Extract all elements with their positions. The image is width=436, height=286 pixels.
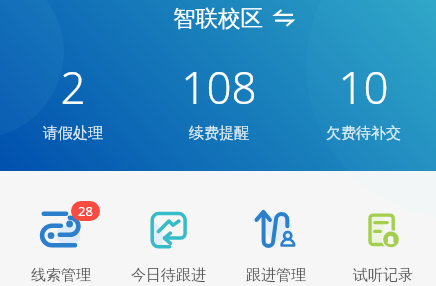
staticText: 跟进管理: [246, 266, 306, 285]
staticText: 今日待跟进: [131, 266, 206, 285]
staticText: 108: [181, 57, 257, 117]
button[interactable]: 今日待跟进: [115, 210, 222, 285]
button[interactable]: 智联校区: [0, 0, 436, 36]
staticText: 2: [60, 57, 86, 117]
button[interactable]: 2: [0, 57, 146, 143]
button[interactable]: 10: [291, 57, 436, 143]
staticText: 28: [78, 202, 93, 220]
button[interactable]: 108: [146, 57, 291, 143]
staticText: 试听记录: [353, 266, 413, 285]
staticText: 10: [338, 57, 389, 117]
staticText: 线索管理: [31, 266, 91, 285]
button[interactable]: 试听记录: [329, 210, 436, 285]
staticText: 请假处理: [43, 124, 103, 143]
staticText: 续费提醒: [189, 124, 249, 143]
button[interactable]: 跟进管理: [222, 210, 329, 285]
button[interactable]: 28: [7, 210, 115, 285]
staticText: 欠费待补交: [326, 124, 401, 143]
other: Switch campus: [275, 10, 293, 26]
staticText: 智联校区: [173, 4, 263, 32]
